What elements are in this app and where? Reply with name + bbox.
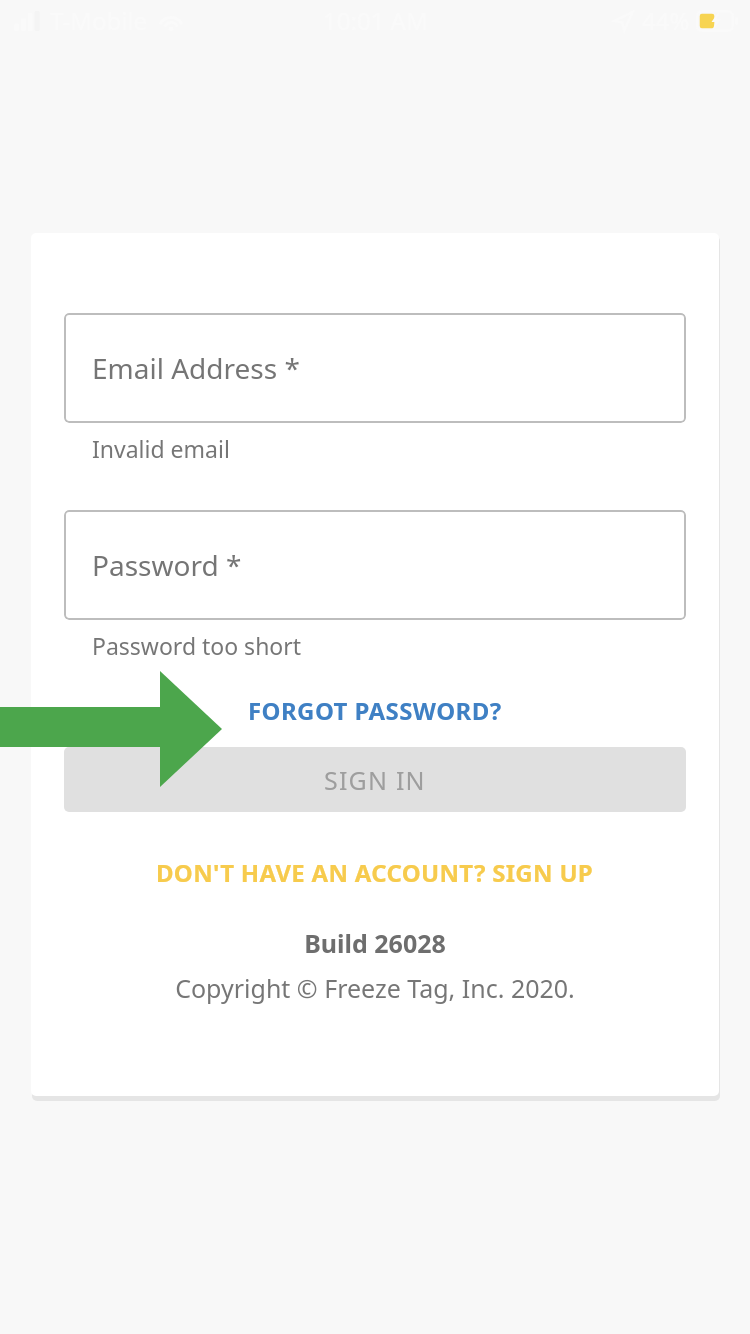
staticText: Email Address *	[92, 349, 300, 387]
staticText: Build 26028	[31, 926, 719, 960]
staticText: SIGN IN	[324, 763, 426, 797]
staticText: Copyright © Freeze Tag, Inc. 2020.	[31, 971, 719, 1005]
button[interactable]: SIGN IN	[64, 747, 686, 812]
staticText: Invalid email	[92, 433, 230, 464]
button[interactable]: DON'T HAVE AN ACCOUNT? SIGN UP	[31, 850, 719, 894]
staticText: DON'T HAVE AN ACCOUNT? SIGN UP	[156, 856, 594, 889]
button[interactable]: Email Address field	[64, 313, 686, 423]
staticText: Password *	[92, 546, 242, 584]
button[interactable]: Password field	[64, 510, 686, 620]
staticText: Password too short	[92, 630, 302, 661]
button[interactable]: FORGOT PASSWORD?	[31, 683, 719, 737]
staticText: FORGOT PASSWORD?	[248, 694, 502, 727]
